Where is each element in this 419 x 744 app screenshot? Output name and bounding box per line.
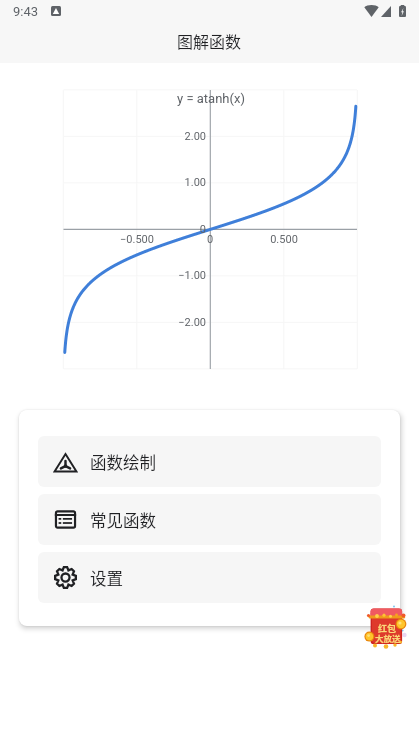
staticText: 红包 — [378, 622, 397, 635]
staticText: 0 — [186, 223, 206, 236]
staticText: −1.00 — [156, 269, 206, 282]
button[interactable]: 函数绘制 — [38, 436, 381, 487]
staticText: 常见函数 — [90, 508, 156, 532]
staticText: 0.500 — [254, 233, 314, 246]
staticText: −2.00 — [156, 316, 206, 329]
button[interactable]: 设置 — [38, 552, 381, 603]
staticText: 图解函数 — [177, 29, 242, 52]
staticText: 设置 — [90, 566, 123, 590]
staticText: 1.00 — [156, 176, 206, 189]
staticText: 9:43 — [13, 4, 39, 19]
staticText: 0 — [203, 233, 217, 246]
staticText: 2.00 — [156, 130, 206, 143]
button[interactable]: 红包大放送 广告 — [362, 604, 410, 652]
staticText: −0.500 — [107, 233, 167, 246]
staticText: y = atanh(x) — [161, 91, 261, 106]
staticText: 函数绘制 — [90, 450, 156, 474]
staticText: 大放送 — [375, 632, 401, 644]
button[interactable]: 常见函数 — [38, 494, 381, 545]
